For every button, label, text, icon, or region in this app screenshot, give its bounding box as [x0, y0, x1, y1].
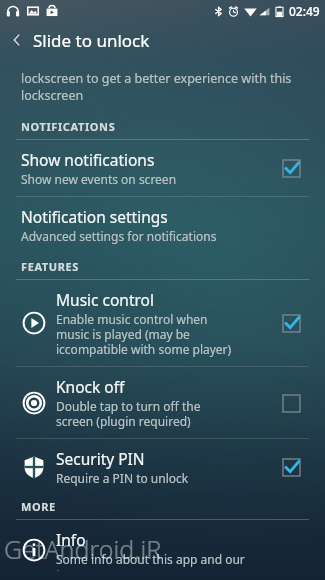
button[interactable]: Show notifications toggle [276, 153, 306, 183]
button[interactable]: Music control [0, 280, 325, 366]
button[interactable]: Show notifications [0, 140, 325, 196]
button[interactable]: Notification settings [0, 197, 325, 253]
staticText: Notification settings [21, 206, 168, 227]
staticText: Slide to unlock [33, 29, 150, 52]
staticText: Music control [56, 289, 154, 310]
staticText: Enable music control when music is playe… [56, 311, 232, 357]
staticText: 02:49 [289, 3, 320, 19]
button[interactable]: Back: Slide to unlock [0, 22, 325, 58]
staticText: Show new events on screen [21, 171, 177, 187]
button[interactable]: Security PIN [0, 439, 325, 495]
staticText: MORE [21, 499, 56, 514]
staticText: NOTIFICATIONS [21, 119, 116, 134]
staticText: lockscreen [21, 87, 84, 104]
staticText: Show notifications [21, 149, 155, 170]
staticText: Require a PIN to unlock [56, 470, 189, 486]
staticText: Security PIN [56, 448, 145, 469]
button[interactable]: Knock off toggle [276, 388, 306, 418]
staticText: lockscreen to get a better experience wi… [21, 70, 292, 87]
button[interactable]: Info [0, 520, 325, 580]
staticText: Advanced settings for notifications [21, 228, 217, 244]
staticText: GetAndroid.iR [4, 532, 162, 566]
staticText: Knock off [56, 376, 125, 397]
button[interactable]: Security PIN toggle [276, 452, 306, 482]
button[interactable]: Music control toggle [276, 308, 306, 338]
staticText: Double tap to turn off the screen (plugi… [56, 398, 201, 429]
button[interactable]: Knock off [0, 367, 325, 438]
staticText: Some info about this app and our team [56, 551, 271, 571]
staticText: Info [56, 529, 86, 550]
staticText: FEATURES [21, 259, 79, 274]
